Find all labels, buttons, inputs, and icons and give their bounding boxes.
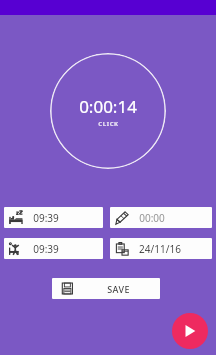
button[interactable]: Note: [110, 207, 212, 228]
button[interactable]: SAVE: [52, 278, 160, 299]
staticText: CLICK: [98, 120, 119, 128]
button[interactable]: Start timer: [172, 313, 208, 349]
staticText: 09:39: [33, 211, 59, 225]
button[interactable]: Date: [110, 238, 212, 259]
staticText: 0:00:14: [79, 95, 137, 118]
staticText: 00:00: [139, 211, 165, 225]
button[interactable]: Wake time: [4, 238, 103, 259]
staticText: SAVE: [107, 283, 130, 295]
button[interactable]: 0:00:14: [50, 53, 166, 169]
button[interactable]: Sleep time: [4, 207, 103, 228]
staticText: 09:39: [33, 242, 59, 256]
staticText: 24/11/16: [139, 242, 181, 256]
